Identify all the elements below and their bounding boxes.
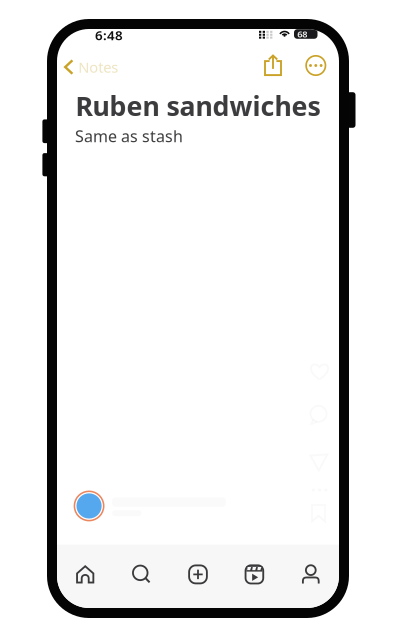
staticText: Same as stash xyxy=(75,125,183,147)
button[interactable]: Search xyxy=(113,545,170,604)
staticText: Notes xyxy=(78,57,118,77)
button[interactable]: Create new post xyxy=(170,545,226,604)
button[interactable]: Home xyxy=(57,545,113,604)
staticText: 6:48 xyxy=(95,26,123,44)
button[interactable]: Reels xyxy=(226,545,283,604)
button[interactable]: Notes xyxy=(63,52,119,82)
staticText: Ruben sandwiches xyxy=(75,88,320,123)
staticText: 68 xyxy=(297,28,307,40)
button[interactable]: Share xyxy=(260,50,286,80)
button[interactable]: Profile xyxy=(283,545,339,604)
button[interactable]: More options xyxy=(302,52,330,79)
